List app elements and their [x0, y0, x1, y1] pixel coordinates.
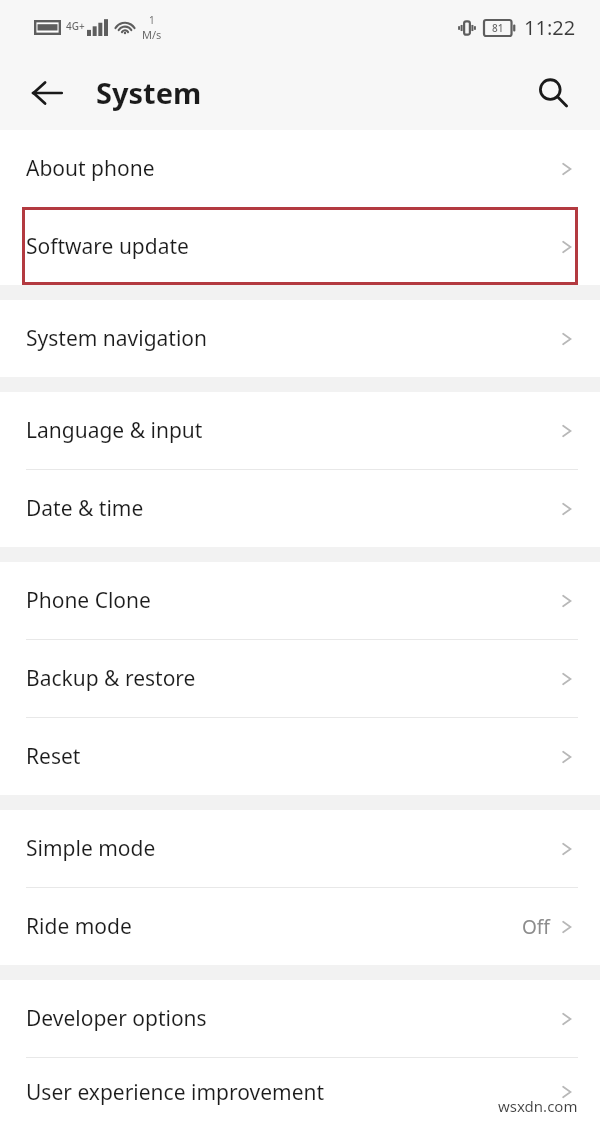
staticText: Phone Clone — [26, 586, 151, 615]
staticText: Reset — [26, 742, 81, 771]
button[interactable]: Ride mode — [0, 888, 600, 965]
button[interactable]: Language & input — [0, 392, 600, 469]
staticText: Developer options — [26, 1004, 207, 1033]
staticText: 81 — [492, 21, 504, 35]
button[interactable]: Back — [20, 66, 74, 120]
staticText: wsxdn.com — [498, 1096, 578, 1116]
staticText: About phone — [26, 154, 155, 183]
button[interactable]: System navigation — [0, 300, 600, 377]
staticText: System — [96, 73, 202, 112]
staticText: Backup & restore — [26, 664, 196, 693]
staticText: Simple mode — [26, 834, 156, 863]
staticText: System navigation — [26, 324, 208, 353]
button[interactable]: Simple mode — [0, 810, 600, 887]
button[interactable]: Reset — [0, 718, 600, 795]
staticText: 11:22 — [524, 14, 576, 41]
button[interactable]: Phone Clone — [0, 562, 600, 639]
staticText: 4G+ — [66, 19, 85, 33]
button[interactable]: Backup & restore — [0, 640, 600, 717]
staticText: Off — [522, 914, 550, 940]
staticText: Software update — [26, 232, 189, 261]
button[interactable]: Software update — [0, 208, 600, 285]
button[interactable]: About phone — [0, 130, 600, 207]
staticText: 1 — [149, 13, 155, 27]
staticText: User experience improvement — [26, 1078, 325, 1107]
button[interactable]: User experience improvement — [0, 1058, 600, 1126]
staticText: M/s — [142, 27, 162, 42]
button[interactable]: Date & time — [0, 470, 600, 547]
staticText: Ride mode — [26, 912, 132, 941]
button[interactable]: Developer options — [0, 980, 600, 1057]
button[interactable]: Search — [526, 66, 580, 120]
staticText: Date & time — [26, 494, 144, 523]
staticText: Language & input — [26, 416, 203, 445]
